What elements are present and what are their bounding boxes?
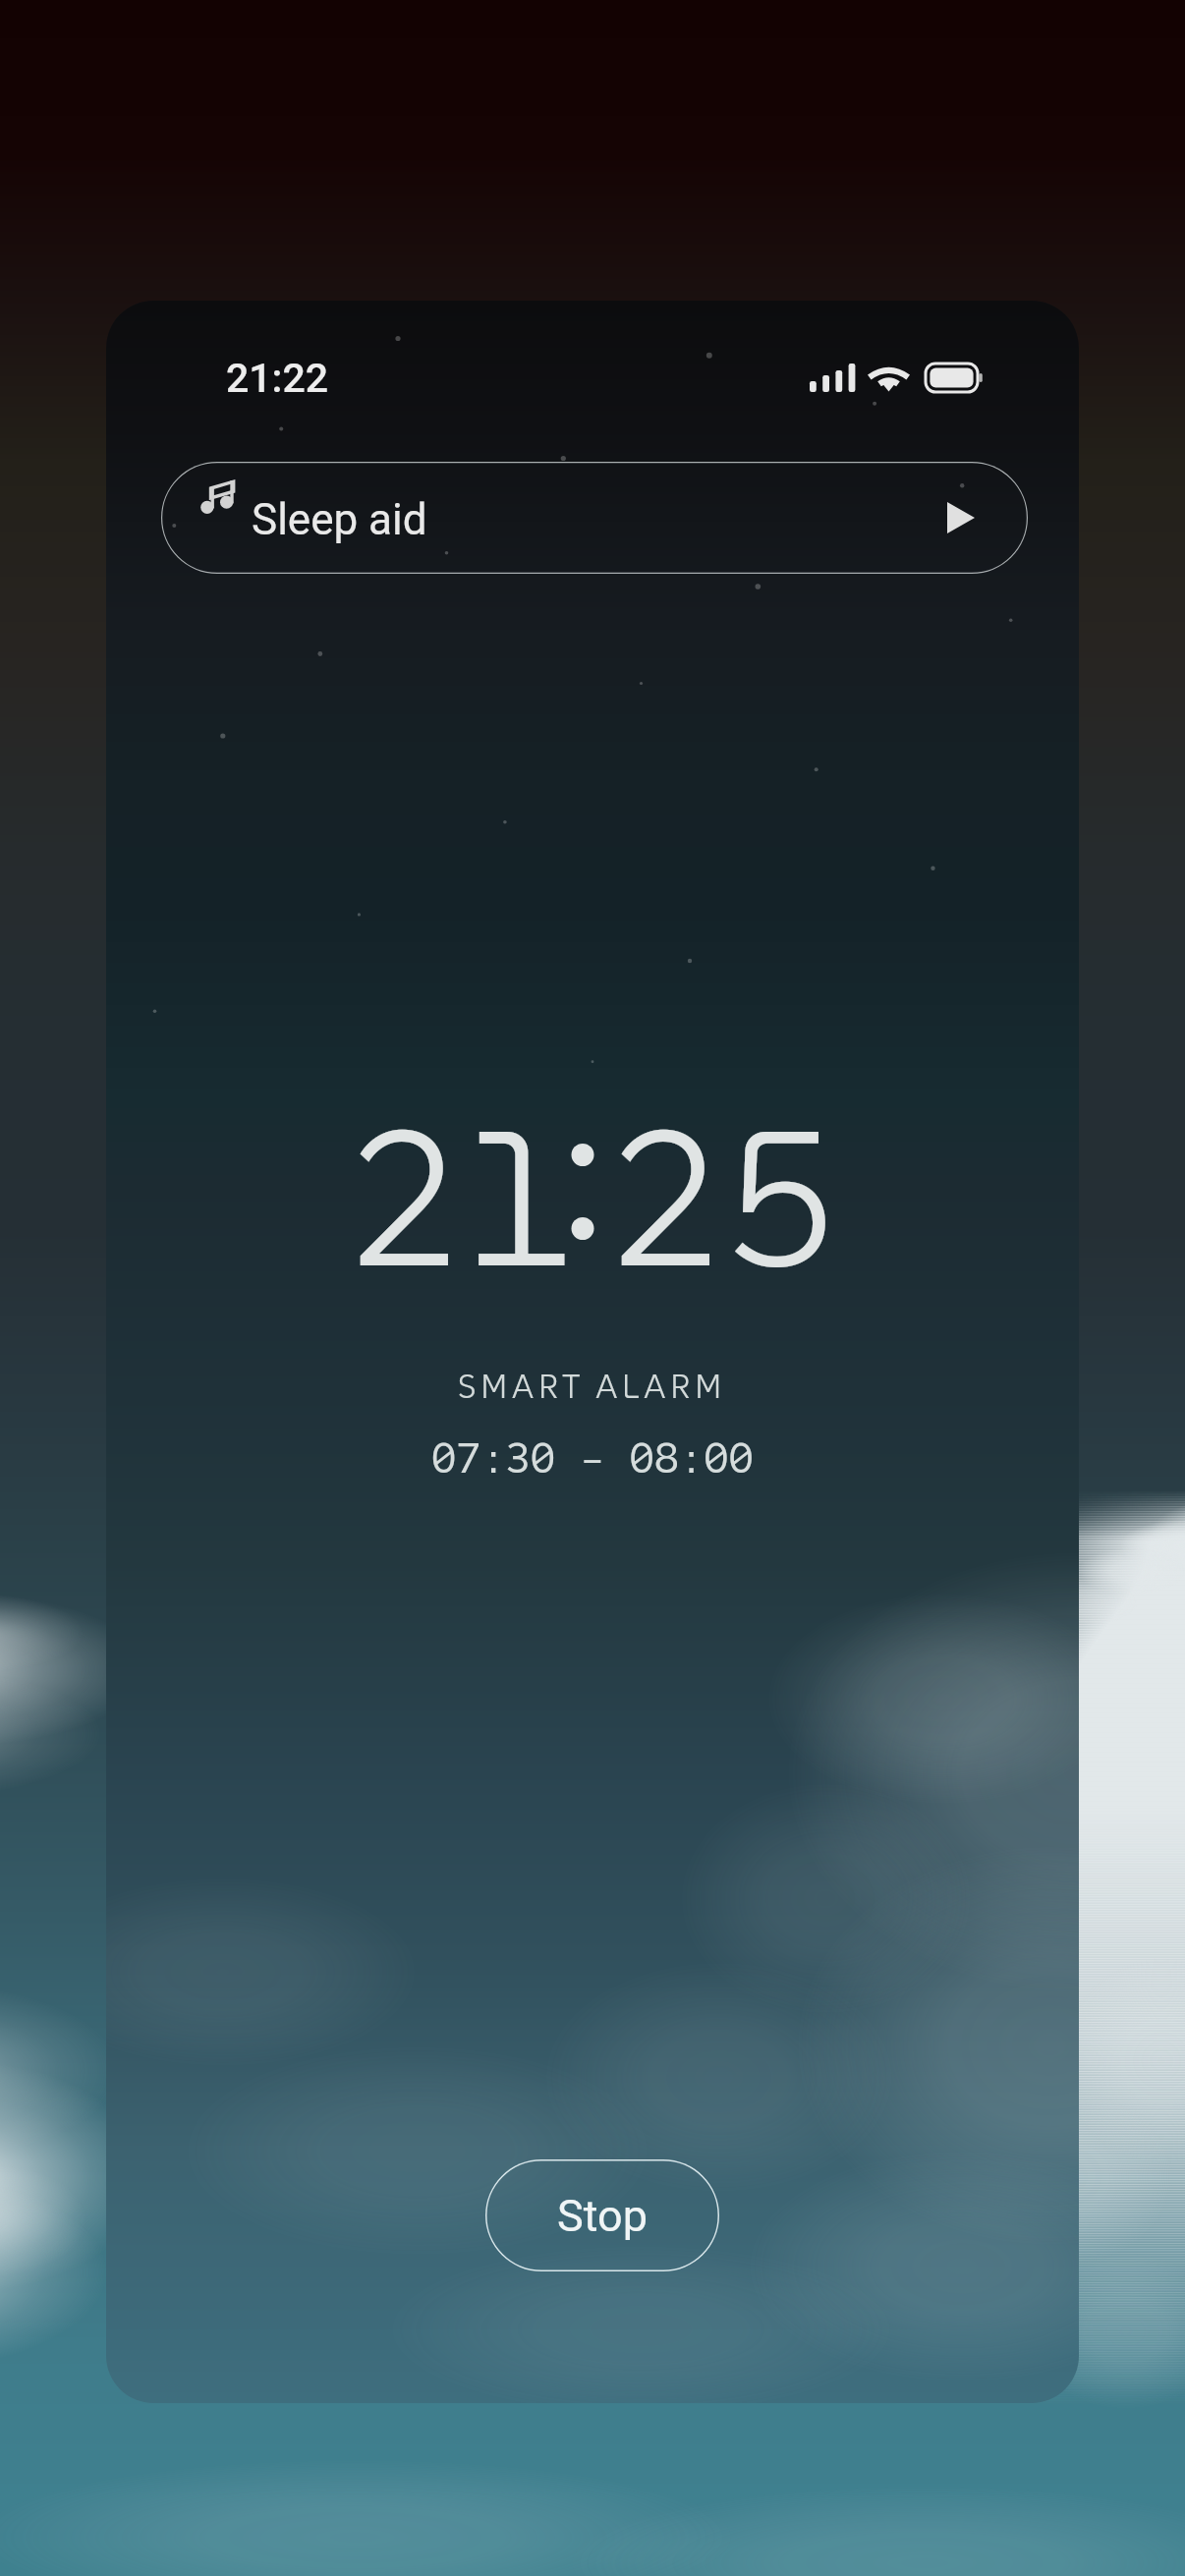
staticText: 07:30 – 08:00 — [431, 1432, 754, 1484]
other: Play sleep aid — [947, 502, 975, 533]
other: Signal, Wi-Fi and battery status — [810, 361, 988, 396]
staticText: Sleep aid — [252, 494, 427, 545]
staticText: 21:22 — [226, 355, 329, 402]
staticText: 25 — [608, 1078, 838, 1319]
staticText: SMART ALARM — [458, 1366, 727, 1408]
staticText: Stop — [557, 2190, 648, 2242]
button[interactable]: Sleep aid — [161, 462, 1028, 574]
staticText: 21 — [347, 1078, 577, 1319]
button[interactable]: Stop — [485, 2159, 719, 2271]
